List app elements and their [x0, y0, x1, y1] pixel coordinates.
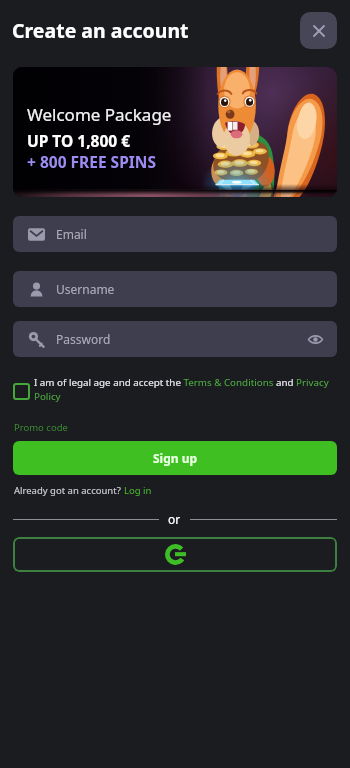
other: Show password	[308, 332, 323, 347]
button[interactable]: Log in	[124, 484, 152, 497]
button[interactable]: Sign up	[13, 441, 337, 475]
button[interactable]: Email	[13, 216, 337, 252]
staticText: UP TO 1,800 €	[27, 130, 131, 151]
staticText: Welcome Package	[27, 103, 172, 126]
button[interactable]: Password	[13, 321, 337, 357]
staticText: Sign up	[153, 450, 198, 466]
staticText: Username	[56, 281, 115, 297]
staticText: Promo code	[14, 421, 68, 434]
staticText: Create an account	[12, 17, 189, 44]
staticText: or	[168, 511, 181, 527]
staticText: Already got an account?	[14, 484, 124, 497]
button[interactable]: Promo code	[14, 421, 68, 434]
staticText: Password	[56, 331, 111, 347]
button[interactable]: Close	[300, 12, 337, 49]
button[interactable]: I am of legal age	[13, 383, 30, 400]
staticText: + 800 FREE SPINS	[27, 151, 156, 172]
staticText: Email	[56, 226, 87, 242]
button[interactable]: Username	[13, 271, 337, 307]
button[interactable]: Continue with Google	[13, 537, 337, 572]
staticText: I am of legal age and accept the Terms &…	[34, 376, 334, 403]
